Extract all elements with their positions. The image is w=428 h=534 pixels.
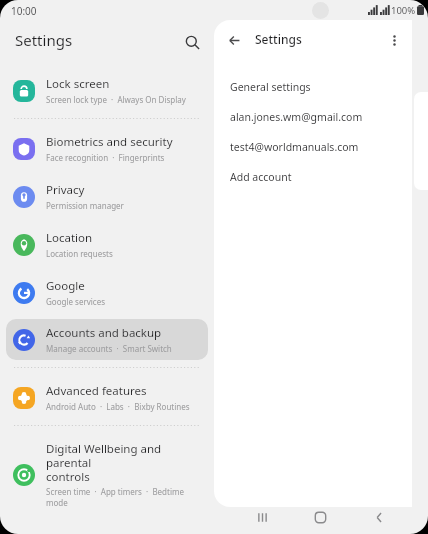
button[interactable]: Location bbox=[6, 224, 208, 265]
button[interactable]: Back bbox=[222, 28, 246, 52]
staticText: Add account bbox=[230, 170, 292, 184]
staticText: Manage accounts · Smart Switch bbox=[46, 343, 172, 354]
button[interactable]: test4@worldmanuals.com bbox=[214, 132, 412, 162]
staticText: 10:00 bbox=[11, 4, 37, 18]
button[interactable]: Search bbox=[178, 28, 206, 56]
button[interactable]: Lock screen bbox=[6, 70, 208, 111]
staticText: Google bbox=[46, 278, 85, 294]
button[interactable]: alan.jones.wm@gmail.com bbox=[214, 102, 412, 132]
button[interactable]: Biometrics and security bbox=[6, 128, 208, 169]
button[interactable]: Recent apps bbox=[245, 500, 279, 534]
button[interactable]: Home bbox=[303, 500, 337, 534]
staticText: Settings bbox=[255, 31, 302, 47]
staticText: Screen lock type · Always On Display bbox=[46, 94, 186, 105]
button[interactable]: Add account bbox=[214, 162, 412, 192]
staticText: test4@worldmanuals.com bbox=[230, 140, 359, 154]
staticText: Google services bbox=[46, 296, 106, 307]
staticText: Lock screen bbox=[46, 76, 110, 92]
staticText: Location bbox=[46, 230, 93, 246]
staticText: Advanced features bbox=[46, 383, 147, 399]
staticText: Privacy bbox=[46, 182, 85, 198]
staticText: Android Auto · Labs · Bixby Routines bbox=[46, 401, 190, 412]
staticText: 100% bbox=[391, 4, 416, 17]
button[interactable]: Accounts and backup bbox=[6, 319, 208, 360]
staticText: General settings bbox=[230, 80, 311, 94]
staticText: alan.jones.wm@gmail.com bbox=[230, 110, 363, 124]
staticText: Screen time · App timers · Bedtime mode bbox=[46, 486, 200, 508]
button[interactable]: Back bbox=[362, 500, 396, 534]
button[interactable]: More options bbox=[382, 28, 406, 52]
button[interactable]: Google bbox=[6, 272, 208, 313]
staticText: Biometrics and security bbox=[46, 134, 173, 150]
button[interactable]: Privacy bbox=[6, 176, 208, 217]
staticText: Face recognition · Fingerprints bbox=[46, 152, 165, 163]
button[interactable]: General settings bbox=[214, 72, 412, 102]
button[interactable]: Advanced features bbox=[6, 377, 208, 418]
button[interactable]: Digital Wellbeing and parental controls bbox=[6, 435, 208, 514]
staticText: Permission manager bbox=[46, 200, 124, 211]
staticText: Location requests bbox=[46, 248, 113, 259]
staticText: Digital Wellbeing and parental controls bbox=[46, 441, 200, 484]
staticText: Accounts and backup bbox=[46, 325, 162, 341]
staticText: Settings bbox=[15, 30, 73, 50]
